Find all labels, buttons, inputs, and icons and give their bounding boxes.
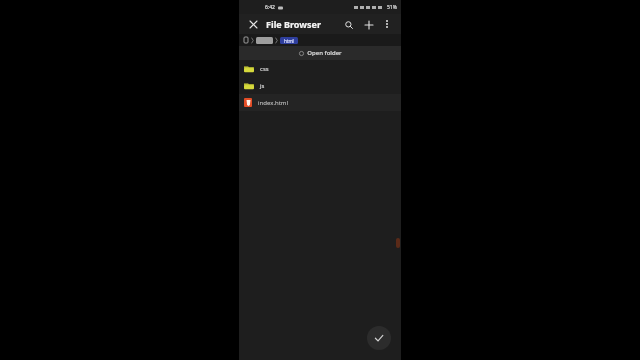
button[interactable]: Add: [361, 17, 376, 32]
button[interactable]: Root storage: [242, 36, 249, 44]
button[interactable]: Open folder: [239, 46, 401, 60]
button[interactable]: Search: [341, 17, 356, 32]
staticText: index.html: [258, 99, 289, 107]
button[interactable]: [256, 37, 273, 44]
button[interactable]: index.html: [239, 94, 401, 111]
button[interactable]: More options: [380, 17, 394, 31]
staticText: Open folder: [307, 49, 342, 57]
staticText: File Browser: [266, 18, 321, 30]
staticText: 51%: [387, 4, 397, 11]
button[interactable]: html: [280, 37, 298, 44]
staticText: html: [284, 38, 294, 44]
staticText: css: [260, 65, 269, 73]
staticText: js: [260, 82, 265, 90]
button[interactable]: css: [239, 60, 401, 77]
button[interactable]: Confirm selection: [367, 326, 391, 350]
button[interactable]: js: [239, 77, 401, 94]
button[interactable]: Close: [246, 17, 260, 31]
staticText: 6:42: [265, 4, 275, 11]
